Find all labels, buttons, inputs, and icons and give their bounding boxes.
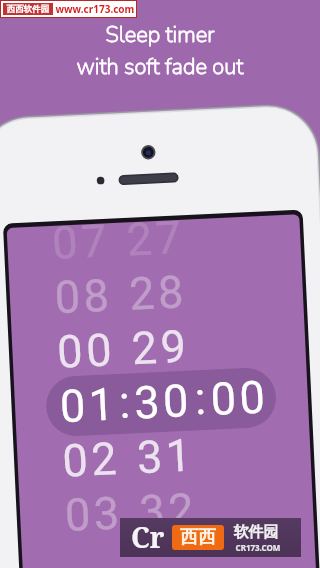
button[interactable] <box>0 0 320 568</box>
